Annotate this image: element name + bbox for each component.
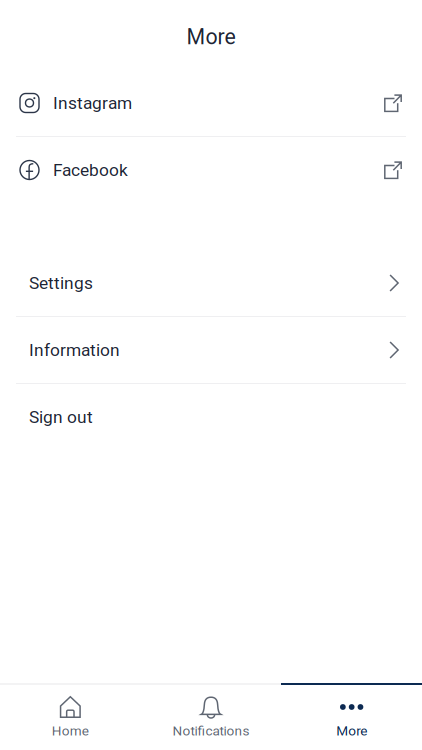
button[interactable]: Facebook xyxy=(0,137,422,203)
button[interactable]: Notifications xyxy=(141,683,281,750)
staticText: Home xyxy=(52,723,89,739)
staticText: Notifications xyxy=(172,723,249,739)
staticText: Information xyxy=(29,340,120,360)
button[interactable]: Instagram xyxy=(0,70,422,136)
staticText: Settings xyxy=(29,273,93,293)
staticText: Facebook xyxy=(53,160,128,180)
staticText: More xyxy=(186,24,235,49)
button[interactable]: Information xyxy=(0,317,422,383)
button[interactable]: Home xyxy=(0,683,141,750)
button[interactable]: Settings xyxy=(0,250,422,316)
button[interactable]: Sign out xyxy=(0,384,422,450)
button[interactable]: More xyxy=(281,683,422,750)
staticText: Instagram xyxy=(53,93,132,113)
staticText: Sign out xyxy=(29,407,93,427)
staticText: More xyxy=(336,723,367,739)
